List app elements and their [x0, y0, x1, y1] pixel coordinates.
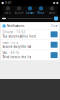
staticText: Notifications [7, 24, 24, 28]
button[interactable]: Chrome · 10:02 [1, 29, 59, 39]
button[interactable]: Settings [54, 16, 58, 20]
staticText: Blue [37, 11, 44, 15]
button[interactable]: Mail · 09:10 [1, 50, 59, 60]
staticText: Wi-Fi [5, 11, 11, 15]
button[interactable]: Rotate [24, 6, 35, 14]
staticText: Chrome · 10:02 [2, 30, 25, 34]
staticText: News · 09:41 [2, 41, 20, 44]
staticText: Second story title text [2, 45, 31, 48]
button[interactable]: News · 09:41 [1, 40, 59, 50]
staticText: Clear [51, 24, 58, 28]
staticText: Top story headline here [2, 35, 36, 38]
button[interactable]: More [46, 6, 57, 14]
staticText: Mail · 09:10 [2, 51, 19, 55]
staticText: More [48, 11, 55, 15]
button[interactable]: Blue [35, 6, 46, 14]
button[interactable]: Wi-Fi [2, 6, 13, 14]
staticText: Rotate [25, 11, 34, 15]
button[interactable]: Sound [13, 6, 24, 14]
staticText: 9:41 [5, 1, 12, 5]
staticText: Sound [14, 11, 23, 15]
staticText: Third item in the list [2, 55, 31, 59]
